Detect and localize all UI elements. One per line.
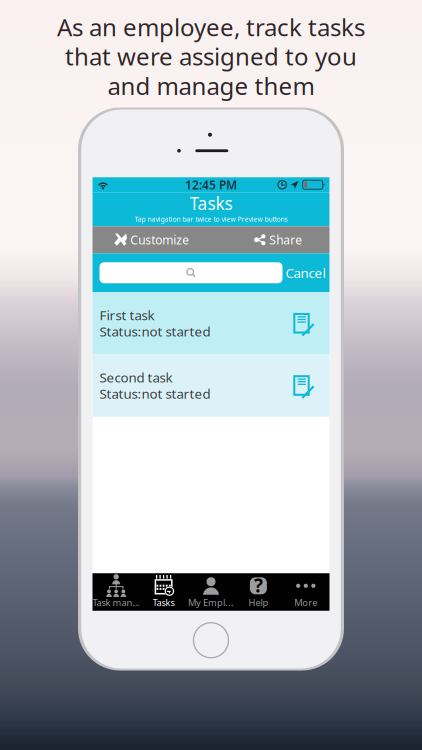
button[interactable]: ? [235,573,282,611]
staticText: that were assigned to you [65,40,357,72]
staticText: My Empl... [188,596,234,609]
button[interactable]: Cancel [282,259,328,286]
button[interactable]: Task man... [92,573,140,611]
staticText: Task man... [92,596,140,609]
staticText: Second task [99,368,172,386]
staticText: Share [269,232,302,248]
button[interactable]: Share [210,226,329,253]
staticText: Tasks [189,192,232,215]
staticText: and manage them [107,70,314,102]
button[interactable]: Customize [92,226,210,253]
button[interactable]: Tasks [140,573,187,611]
staticText: More [294,596,317,609]
button[interactable]: Second task [92,354,329,417]
staticText: Cancel [285,264,325,282]
button[interactable]: More [282,573,329,611]
button[interactable]: First task [92,292,329,354]
staticText: Help [248,596,268,609]
staticText: ? [254,573,263,598]
staticText: Status:not started [99,385,210,402]
staticText: Tap navigation bar twice to view Preview… [134,215,287,224]
staticText: 12:45 PM [185,177,237,193]
staticText: Status:not started [99,322,210,340]
button[interactable]: My Empl... [187,573,235,611]
staticText: Tasks [153,596,175,609]
staticText: As an employee, track tasks [57,11,365,43]
staticText: First task [99,306,154,324]
staticText: Customize [130,232,189,248]
